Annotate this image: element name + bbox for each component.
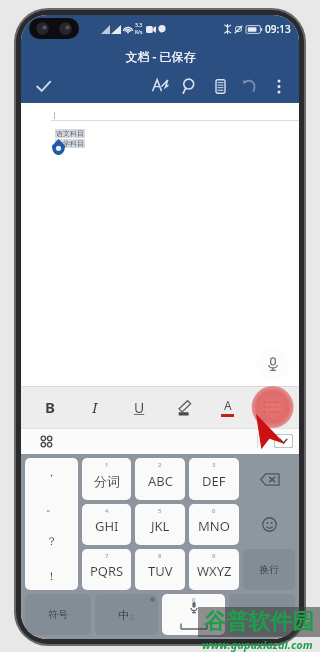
- button[interactable]: Emoji: [243, 504, 295, 545]
- staticText: U: [134, 398, 145, 417]
- button[interactable]: Hide keyboard: [257, 432, 293, 450]
- button[interactable]: Bold: [27, 386, 72, 428]
- staticText: 符号: [48, 608, 68, 621]
- button[interactable]: 1: [82, 458, 131, 500]
- staticText: ！: [46, 569, 57, 583]
- button[interactable]: Backspace: [243, 458, 295, 500]
- staticText: PQRS: [90, 562, 124, 580]
- staticText: GHI: [95, 517, 119, 535]
- staticText: I: [92, 397, 98, 417]
- staticText: 数学科目: [56, 139, 84, 148]
- staticText: WXYZ: [197, 562, 232, 580]
- button[interactable]: Voice input: [257, 348, 289, 380]
- staticText: 8: [158, 552, 162, 560]
- button[interactable]: 5: [135, 504, 185, 545]
- staticText: 文档 - 已保存: [125, 48, 196, 64]
- staticText: ABC: [148, 472, 173, 490]
- staticText: 09:13: [265, 22, 291, 36]
- button[interactable]: Bulleted list: [249, 386, 293, 428]
- staticText: 3.3: [135, 22, 143, 29]
- staticText: ，: [46, 465, 57, 479]
- button[interactable]: ，: [25, 458, 78, 590]
- staticText: 0: [192, 596, 196, 604]
- staticText: 1: [105, 461, 109, 469]
- button[interactable]: Ink annotation: [145, 71, 175, 101]
- button[interactable]: 3: [189, 458, 239, 500]
- staticText: 4: [105, 507, 109, 515]
- staticText: 5: [158, 507, 162, 515]
- button[interactable]: 2: [135, 458, 185, 500]
- staticText: 英: [129, 614, 135, 622]
- button[interactable]: 9: [189, 549, 239, 590]
- staticText: 2: [158, 461, 162, 469]
- staticText: 分词: [94, 473, 120, 489]
- button[interactable]: Italic: [72, 386, 117, 428]
- button[interactable]: Highlight: [161, 386, 205, 428]
- button[interactable]: 4: [82, 504, 131, 545]
- staticText: 7: [105, 552, 109, 560]
- staticText: 中: [118, 608, 129, 622]
- button[interactable]: More options: [265, 72, 293, 100]
- staticText: B: [45, 397, 55, 417]
- staticText: TUV: [148, 562, 173, 580]
- button[interactable]: Undo: [235, 71, 265, 101]
- staticText: 。: [46, 500, 57, 514]
- button[interactable]: Underline: [117, 386, 161, 428]
- staticText: JKL: [151, 517, 170, 535]
- staticText: 换行: [259, 563, 279, 576]
- button[interactable]: Search: [175, 71, 205, 101]
- staticText: ？: [46, 534, 57, 548]
- button[interactable]: 中: [95, 594, 158, 635]
- staticText: MNO: [198, 517, 230, 535]
- button[interactable]: 8: [135, 549, 185, 590]
- staticText: 语文科目: [56, 129, 84, 138]
- button[interactable]: Font color: [205, 386, 249, 428]
- button[interactable]: Space: [162, 594, 225, 635]
- button[interactable]: [229, 594, 295, 635]
- staticText: A: [224, 397, 232, 413]
- staticText: 3: [212, 461, 216, 469]
- button[interactable]: 6: [189, 504, 239, 545]
- staticText: 谷普软件园: [204, 608, 314, 636]
- button[interactable]: 符号: [25, 594, 91, 635]
- button[interactable]: 换行: [243, 549, 295, 590]
- button[interactable]: Done: [27, 70, 59, 102]
- staticText: www.gupuxlazal.com: [202, 637, 313, 652]
- staticText: 9: [212, 552, 216, 560]
- staticText: K/s: [135, 29, 143, 36]
- button[interactable]: Keyboard apps: [33, 428, 59, 454]
- staticText: DEF: [202, 472, 226, 490]
- button[interactable]: 7: [82, 549, 131, 590]
- staticText: 6: [212, 507, 216, 515]
- button[interactable]: View mode: [205, 71, 235, 101]
